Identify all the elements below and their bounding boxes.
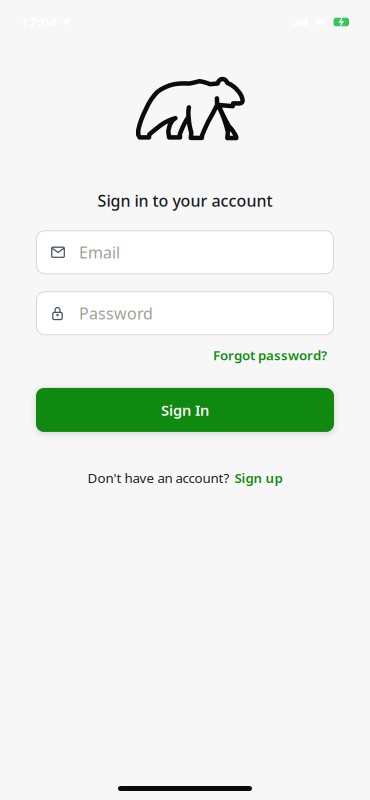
staticText: Password (79, 303, 153, 324)
button[interactable]: Sign up (234, 469, 282, 487)
secureTextField[interactable]: Password (79, 303, 334, 324)
staticText: Sign in to your account (97, 190, 272, 211)
button[interactable]: Sign In (36, 388, 334, 432)
staticText: Forgot password? (213, 346, 327, 364)
textField[interactable]: Email (79, 242, 334, 263)
staticText: Email (79, 242, 120, 263)
staticText: Sign up (234, 469, 282, 487)
button[interactable]: Forgot password? (213, 346, 327, 364)
staticText: Sign In (161, 400, 209, 420)
staticText: Don't have an account? (87, 469, 229, 487)
